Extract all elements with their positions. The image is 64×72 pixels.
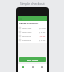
- staticText: $12.00: [39, 27, 46, 30]
- staticText: Simple checkout: [20, 2, 45, 6]
- button[interactable]: Profile: [38, 64, 46, 72]
- staticText: PAY NOW: [27, 58, 39, 61]
- button[interactable]: Item two: [18, 30, 47, 34]
- button[interactable]: Cart: [29, 64, 37, 72]
- staticText: ORDER SUMMARY: [19, 22, 39, 25]
- staticText: Discount: [22, 35, 32, 38]
- staticText: Item two: [22, 31, 32, 34]
- button[interactable]: Discount: [18, 34, 47, 38]
- button[interactable]: Shipping: [18, 38, 47, 42]
- staticText: Item one: [22, 27, 32, 30]
- staticText: $ 9.50: [39, 31, 46, 34]
- button[interactable]: Home: [19, 64, 27, 72]
- button[interactable]: PAY NOW: [19, 57, 46, 62]
- staticText: -$2.00: [39, 35, 46, 38]
- staticText: Shipping: [22, 39, 32, 42]
- button[interactable]: Item one: [18, 26, 47, 30]
- staticText: $ 4.00: [39, 39, 46, 42]
